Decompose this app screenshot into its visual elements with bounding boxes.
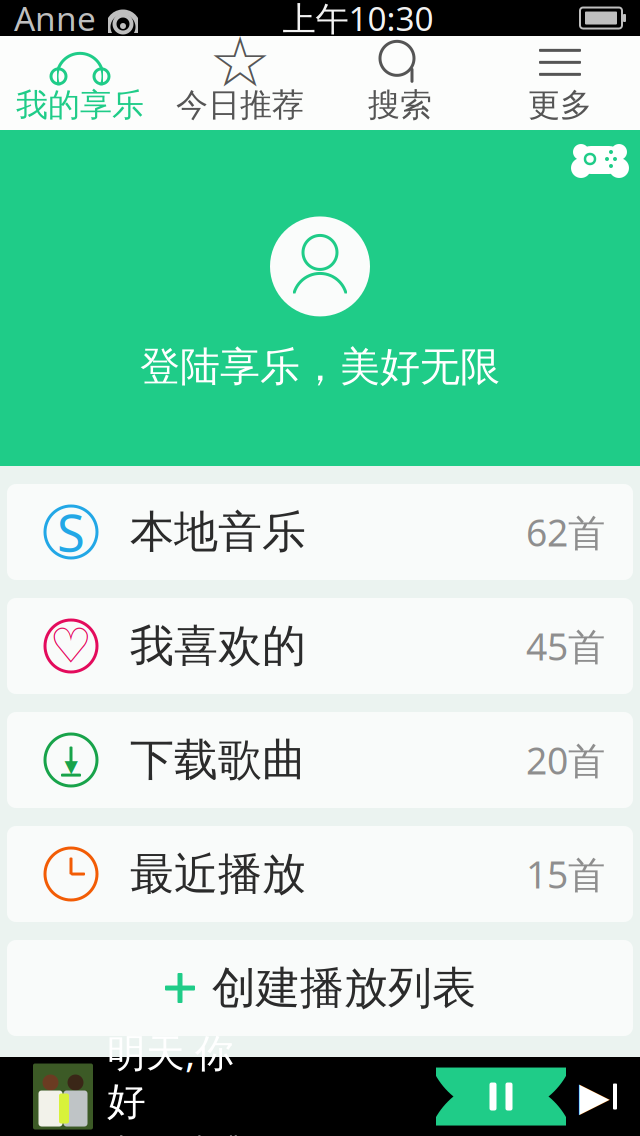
staticText: ♡	[49, 619, 92, 673]
staticText: 62首	[526, 507, 605, 557]
staticText: 20首	[526, 735, 605, 785]
staticText: 我的享乐	[16, 85, 144, 125]
staticText: 15首	[526, 849, 605, 899]
button[interactable]: 登陆享乐，美好无限	[140, 216, 500, 391]
button[interactable]: 创建播放列表	[7, 940, 633, 1036]
staticText: 我喜欢的	[130, 619, 306, 673]
staticText: 最近播放	[130, 847, 306, 901]
staticText: 创建播放列表	[212, 961, 476, 1015]
button[interactable]: 搜索	[320, 36, 480, 130]
staticText: ☆	[209, 23, 271, 102]
staticText: 更多	[528, 85, 592, 125]
button[interactable]: ☆	[160, 36, 320, 130]
staticText: 下载歌曲	[130, 733, 306, 787]
button[interactable]: 明天,你好	[0, 1026, 287, 1136]
button[interactable]: ♡	[7, 598, 633, 694]
button[interactable]: 暂停	[436, 1067, 566, 1125]
staticText: 牛奶@咖啡	[107, 1129, 244, 1136]
button[interactable]: 游戏	[574, 130, 640, 182]
button[interactable]: ▾	[7, 712, 633, 808]
staticText: 登陆享乐，美好无限	[140, 342, 500, 391]
staticText: ▾	[64, 750, 77, 781]
staticText: 本地音乐	[130, 505, 306, 559]
button[interactable]: 我的享乐	[0, 36, 160, 130]
staticText: 今日推荐	[176, 85, 304, 125]
staticText: 上午10:30	[282, 0, 433, 40]
button[interactable]: 下一首	[572, 1076, 624, 1116]
staticText: 明天,你好	[107, 1026, 234, 1125]
button[interactable]: 最近播放	[7, 826, 633, 922]
staticText: ▶	[579, 1074, 610, 1119]
button[interactable]: 更多	[480, 36, 640, 130]
button[interactable]: S	[7, 484, 633, 580]
staticText: S	[57, 498, 85, 566]
staticText: 45首	[526, 621, 605, 671]
staticText: Anne	[14, 0, 96, 40]
staticText: 搜索	[368, 85, 432, 125]
